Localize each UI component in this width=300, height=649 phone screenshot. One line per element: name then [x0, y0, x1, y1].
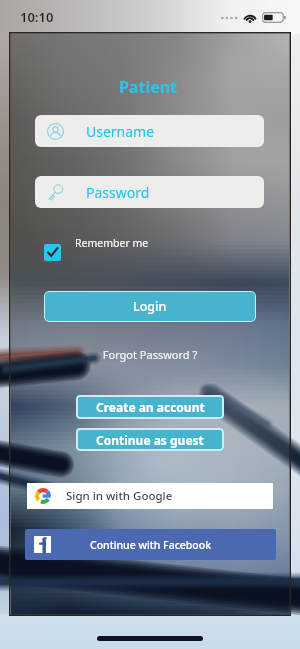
button[interactable]: Sign in with Google: [27, 483, 273, 509]
staticText: Continue as guest: [96, 432, 204, 448]
staticText: Password: [86, 183, 150, 202]
staticText: Login: [133, 298, 167, 315]
staticText: Continue with Facebook: [90, 538, 212, 552]
button[interactable]: Continue as guest: [76, 428, 224, 451]
staticText: Sign in with Google: [66, 488, 173, 504]
staticText: Patient: [9, 76, 287, 98]
staticText: Create an account: [96, 399, 205, 415]
button[interactable]: Remember me: [41, 234, 166, 264]
button[interactable]: Create an account: [76, 395, 224, 419]
button[interactable]: Password: [35, 176, 264, 208]
staticText: Remember me: [75, 236, 149, 250]
button[interactable]: Username: [35, 115, 264, 147]
button[interactable]: Login: [44, 291, 256, 322]
staticText: Username: [86, 122, 155, 141]
staticText: 10:10: [20, 8, 54, 26]
button[interactable]: Continue with Facebook: [25, 529, 276, 560]
button[interactable]: Forgot Password ?: [11, 347, 289, 362]
